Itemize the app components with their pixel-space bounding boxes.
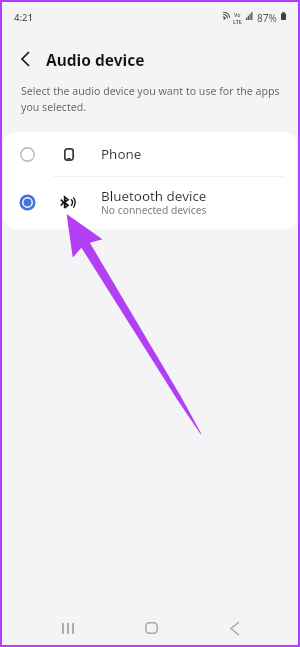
staticText: Audio device bbox=[46, 49, 145, 70]
staticText: Phone bbox=[101, 145, 142, 163]
staticText: Select the audio device you want to use … bbox=[21, 84, 283, 114]
staticText: Bluetooth device bbox=[101, 187, 207, 205]
staticText: 87% bbox=[257, 11, 277, 25]
staticText: No connected devices bbox=[101, 203, 207, 217]
staticText: 4:21 bbox=[14, 11, 33, 24]
button[interactable]: Home bbox=[128, 605, 174, 647]
button[interactable]: Bluetooth device bbox=[3, 177, 297, 229]
button[interactable]: Recent apps bbox=[45, 605, 91, 647]
button[interactable]: Back bbox=[212, 605, 258, 647]
button[interactable]: Back bbox=[7, 41, 43, 77]
button[interactable]: Phone bbox=[3, 132, 297, 176]
staticText: LTE bbox=[233, 18, 242, 25]
staticText: Vo bbox=[234, 11, 241, 18]
